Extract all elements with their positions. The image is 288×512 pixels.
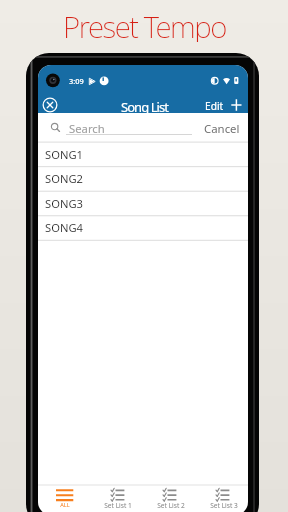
staticText: Song List: [121, 98, 168, 116]
staticText: Set List 1: [104, 501, 132, 510]
button[interactable]: Search: [51, 123, 61, 133]
button[interactable]: Edit: [202, 96, 227, 116]
button[interactable]: Add: [228, 97, 244, 113]
button[interactable]: SONG3: [38, 192, 248, 216]
button[interactable]: SONG2: [38, 167, 248, 191]
staticText: Set List 2: [157, 501, 185, 510]
staticText: Cancel: [204, 121, 240, 137]
staticText: Preset Tempo: [63, 6, 226, 42]
staticText: SONG1: [45, 147, 83, 162]
button[interactable]: Close: [40, 95, 60, 115]
button[interactable]: SONG1: [38, 143, 248, 167]
button[interactable]: Set List 1: [90, 486, 142, 512]
button[interactable]: Set List 2: [142, 486, 195, 512]
staticText: SONG3: [45, 196, 83, 211]
staticText: ALL: [60, 501, 70, 509]
staticText: Set List 3: [210, 501, 238, 510]
staticText: Search: [69, 121, 105, 136]
button[interactable]: Set List 3: [195, 486, 248, 512]
button[interactable]: Cancel: [204, 121, 240, 137]
button[interactable]: SONG4: [38, 216, 248, 240]
staticText: SONG2: [45, 171, 83, 186]
staticText: Edit: [205, 99, 224, 113]
button[interactable]: ALL: [38, 486, 90, 512]
staticText: 3:09: [69, 76, 84, 86]
staticText: SONG4: [45, 220, 83, 235]
